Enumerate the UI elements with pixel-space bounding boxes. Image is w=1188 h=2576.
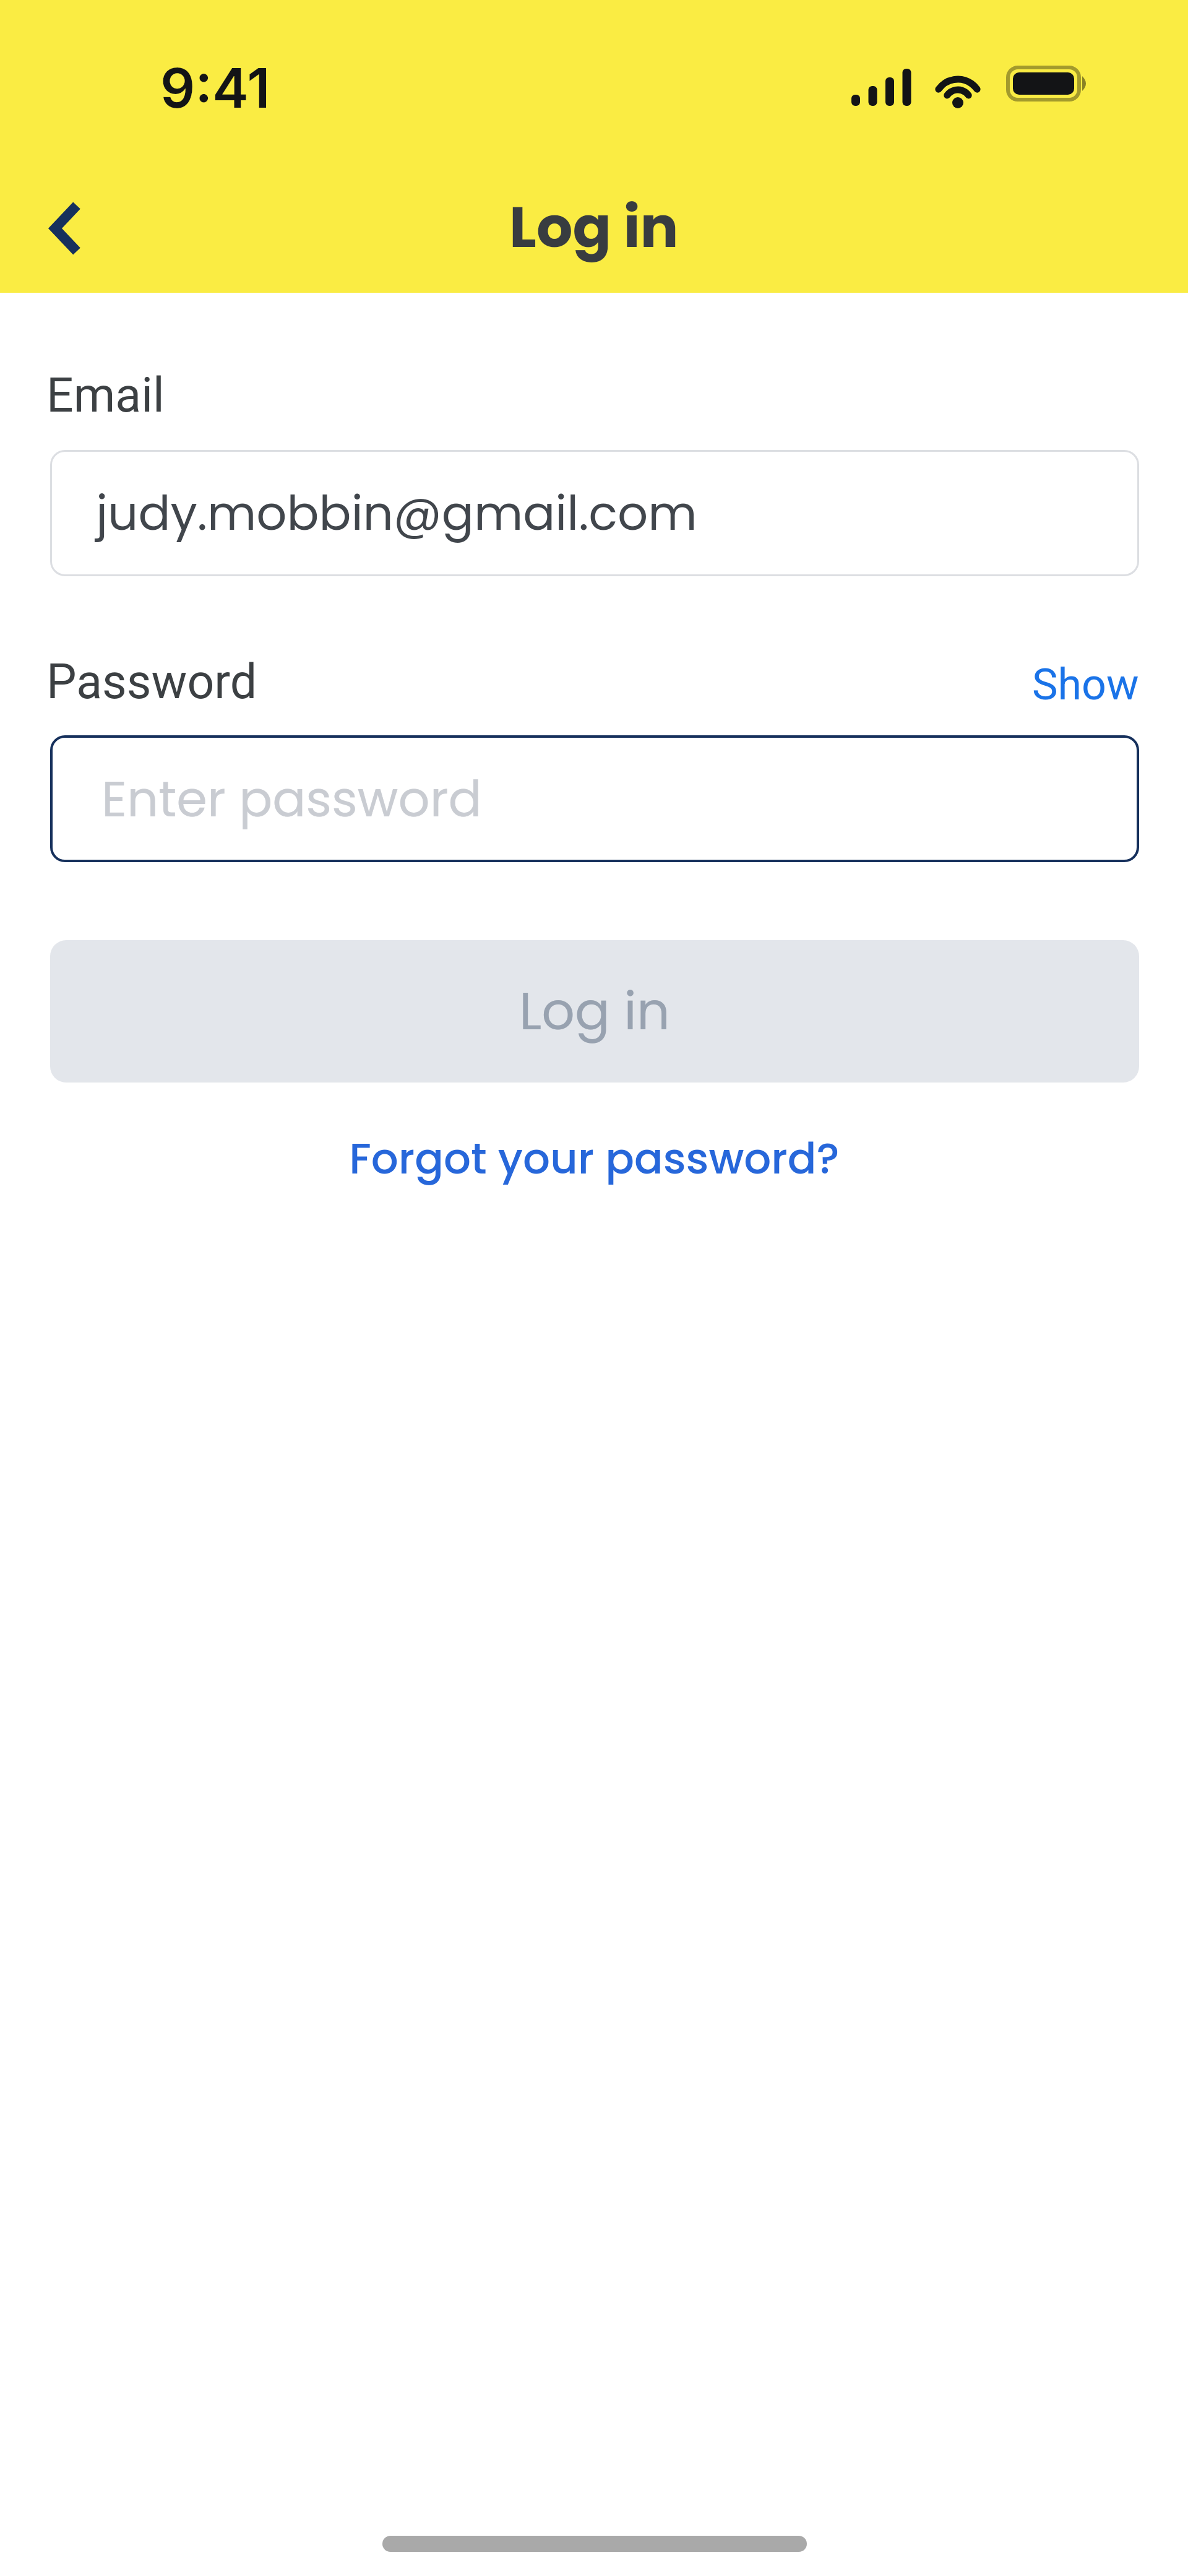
staticText: Forgot your password?: [349, 1129, 840, 1189]
staticText: Log in: [519, 975, 670, 1048]
staticText: Email: [46, 368, 165, 423]
staticText: judy.mobbin@gmail.com: [96, 480, 697, 547]
staticText: Log in: [509, 187, 679, 267]
button[interactable]: judy.mobbin@gmail.com: [50, 450, 1139, 576]
button[interactable]: Enter password: [50, 735, 1139, 862]
button[interactable]: Forgot your password?: [349, 1129, 840, 1189]
staticText: 9:41: [160, 55, 270, 121]
staticText: Password: [46, 654, 257, 710]
button[interactable]: Log in: [50, 940, 1139, 1083]
staticText: Enter password: [101, 764, 482, 834]
button[interactable]: Show: [1032, 659, 1139, 710]
staticText: Show: [1032, 659, 1139, 710]
button[interactable]: [34, 192, 108, 266]
